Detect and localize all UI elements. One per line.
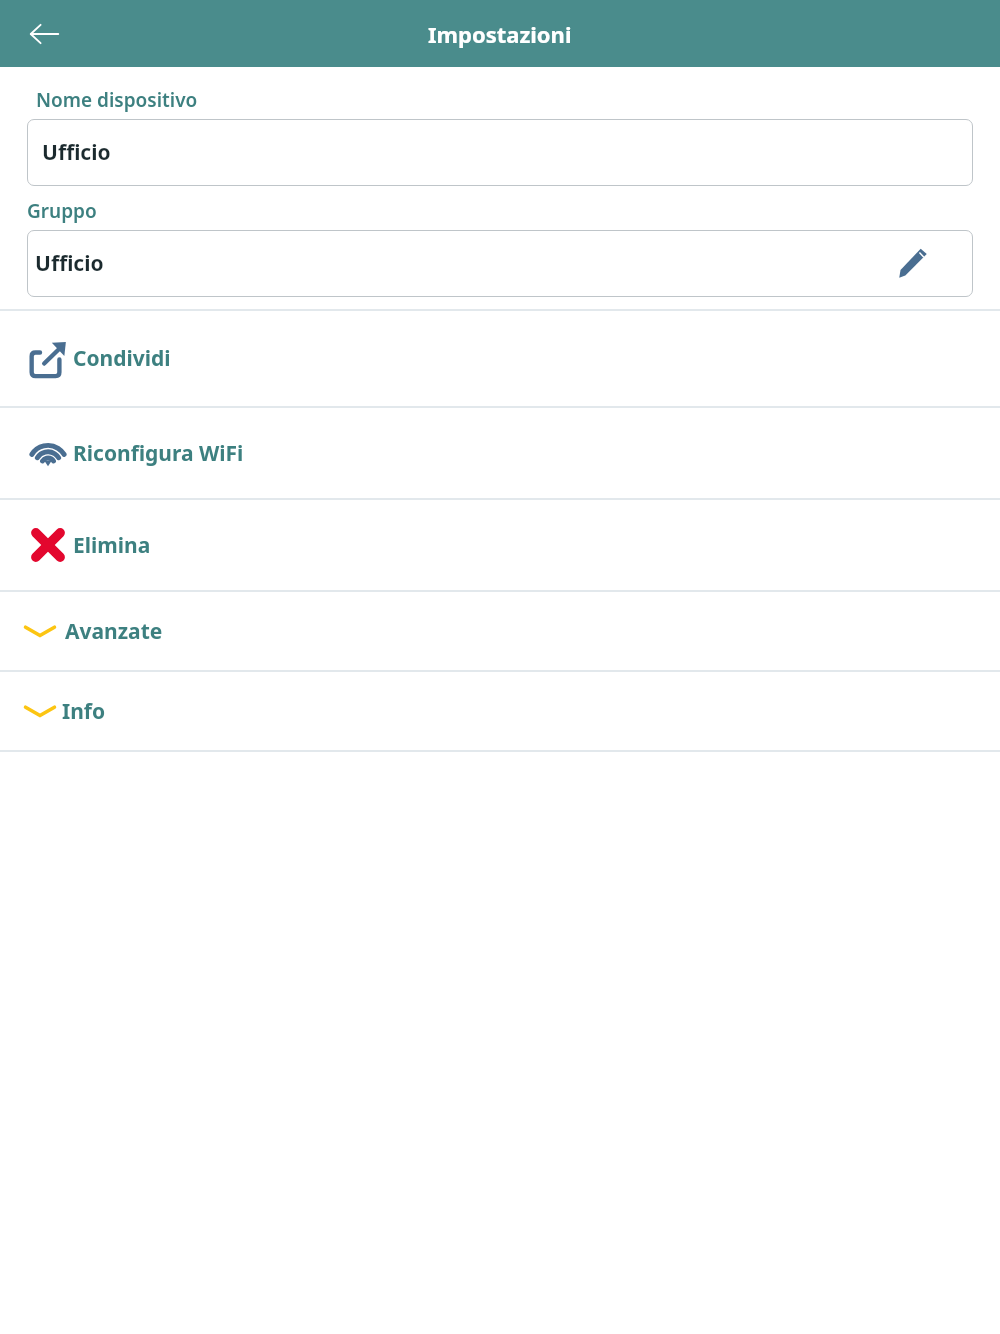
button[interactable]: Elimina xyxy=(0,500,1000,590)
staticText: Gruppo xyxy=(27,198,97,224)
staticText: Riconfigura WiFi xyxy=(73,439,244,468)
button[interactable]: Condividi xyxy=(0,311,1000,406)
staticText: Condividi xyxy=(73,344,171,373)
button[interactable]: Info xyxy=(0,672,1000,750)
button[interactable]: Ufficio xyxy=(27,230,973,297)
staticText: Ufficio xyxy=(42,138,111,167)
staticText: Ufficio xyxy=(35,249,104,278)
button[interactable]: Ufficio xyxy=(27,119,973,186)
staticText: Avanzate xyxy=(65,617,163,646)
button[interactable]: Riconfigura WiFi xyxy=(0,408,1000,498)
button[interactable]: Avanzate xyxy=(0,592,1000,670)
staticText: Info xyxy=(62,697,106,726)
staticText: Elimina xyxy=(73,531,151,560)
staticText: Impostazioni xyxy=(428,19,572,49)
button[interactable]: Back xyxy=(14,4,74,64)
staticText: Nome dispositivo xyxy=(36,87,198,113)
button[interactable]: Edit group xyxy=(891,242,935,286)
